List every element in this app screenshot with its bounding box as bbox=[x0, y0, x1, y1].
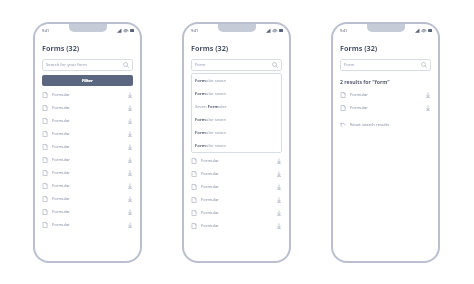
staticText: Formular bbox=[52, 222, 127, 228]
other: Download bbox=[127, 118, 133, 124]
other: Download bbox=[127, 209, 133, 215]
other: Download bbox=[127, 170, 133, 176]
button[interactable]: Formular seven bbox=[191, 113, 282, 126]
staticText: Formular bbox=[52, 196, 127, 202]
staticText: Reset search results bbox=[350, 122, 390, 128]
other: Download bbox=[425, 92, 431, 98]
button[interactable]: Formular seven bbox=[191, 74, 282, 87]
staticText: Form bbox=[344, 62, 421, 68]
staticText: Formular bbox=[201, 210, 276, 216]
staticText: 9:41 bbox=[42, 28, 50, 33]
other: Download bbox=[127, 105, 133, 111]
staticText: Formular bbox=[350, 92, 425, 98]
staticText: Form bbox=[195, 62, 272, 68]
staticText: Formular bbox=[52, 144, 127, 150]
button[interactable]: Formular bbox=[340, 101, 431, 114]
other: Download bbox=[127, 222, 133, 228]
staticText: Formular bbox=[52, 131, 127, 137]
other: Download bbox=[276, 158, 282, 164]
button[interactable]: Form bbox=[340, 59, 431, 71]
button[interactable]: Formular bbox=[191, 219, 282, 232]
staticText: Seven Formular bbox=[195, 104, 227, 110]
button[interactable]: Formular bbox=[42, 166, 133, 179]
staticText: Formular bbox=[201, 223, 276, 229]
staticText: Formular seven bbox=[195, 78, 227, 84]
other: Download bbox=[276, 197, 282, 203]
button[interactable]: Search for your form bbox=[42, 59, 133, 71]
button[interactable]: Filter bbox=[42, 75, 133, 86]
staticText: Formular bbox=[52, 92, 127, 98]
staticText: Forms (32) bbox=[42, 43, 80, 53]
staticText: Formular bbox=[201, 197, 276, 203]
button[interactable]: Formular bbox=[191, 206, 282, 219]
staticText: Formular seven bbox=[195, 117, 227, 123]
staticText: Formular seven bbox=[195, 143, 227, 149]
button[interactable]: Seven Formular bbox=[191, 100, 282, 113]
other: Download bbox=[127, 183, 133, 189]
staticText: Formular seven bbox=[195, 130, 227, 136]
button[interactable]: Formular seven bbox=[191, 87, 282, 100]
button[interactable]: Formular bbox=[42, 101, 133, 114]
other: Download bbox=[276, 171, 282, 177]
other: Download bbox=[276, 184, 282, 190]
button[interactable]: Form bbox=[191, 59, 282, 71]
other: Download bbox=[425, 105, 431, 111]
button[interactable]: Reset search results bbox=[340, 119, 431, 130]
button[interactable]: Formular bbox=[191, 193, 282, 206]
button[interactable]: Formular bbox=[42, 114, 133, 127]
staticText: Formular bbox=[201, 184, 276, 190]
staticText: Formular bbox=[52, 105, 127, 111]
button[interactable]: Formular bbox=[191, 180, 282, 193]
other: Download bbox=[127, 157, 133, 163]
staticText: Formular bbox=[52, 209, 127, 215]
button[interactable]: Formular seven bbox=[191, 126, 282, 139]
button[interactable]: Formular bbox=[191, 154, 282, 167]
staticText: Formular bbox=[201, 171, 276, 177]
button[interactable]: Formular bbox=[42, 153, 133, 166]
other: Download bbox=[127, 92, 133, 98]
staticText: Search for your form bbox=[46, 62, 123, 68]
button[interactable]: Formular bbox=[42, 218, 133, 231]
other: Download bbox=[276, 223, 282, 229]
button[interactable]: Formular bbox=[42, 127, 133, 140]
other: Download bbox=[127, 196, 133, 202]
button[interactable]: Formular bbox=[42, 192, 133, 205]
staticText: Formular bbox=[201, 158, 276, 164]
staticText: Formular bbox=[52, 170, 127, 176]
staticText: 9:41 bbox=[191, 28, 199, 33]
staticText: Formular bbox=[52, 118, 127, 124]
button[interactable]: Formular bbox=[42, 179, 133, 192]
staticText: Formular bbox=[52, 157, 127, 163]
button[interactable]: Formular bbox=[42, 140, 133, 153]
other: Download bbox=[127, 131, 133, 137]
staticText: Formular seven bbox=[195, 91, 227, 97]
staticText: Forms (32) bbox=[340, 43, 378, 53]
button[interactable]: Formular bbox=[340, 88, 431, 101]
button[interactable]: Formular bbox=[42, 88, 133, 101]
staticText: 2 results for "form" bbox=[340, 78, 390, 85]
button[interactable]: Formular bbox=[42, 205, 133, 218]
staticText: Forms (32) bbox=[191, 43, 229, 53]
button[interactable]: Formular seven bbox=[191, 139, 282, 152]
button[interactable]: Formular bbox=[191, 167, 282, 180]
other: Download bbox=[276, 210, 282, 216]
staticText: 9:41 bbox=[340, 28, 348, 33]
staticText: Formular bbox=[52, 183, 127, 189]
staticText: Formular bbox=[350, 105, 425, 111]
other: Download bbox=[127, 144, 133, 150]
staticText: Filter bbox=[82, 78, 93, 84]
